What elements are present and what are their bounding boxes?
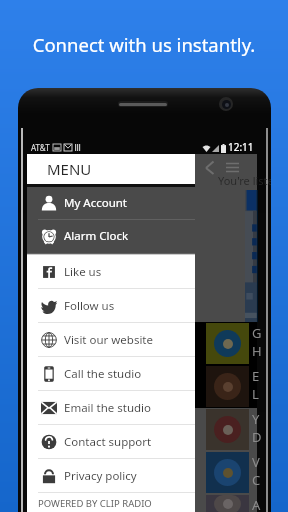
staticText: Connect with us instantly.: [0, 32, 288, 57]
button[interactable]: Privacy policy: [27, 459, 195, 493]
staticText: My Account: [64, 195, 127, 211]
button[interactable]: V: [195, 451, 257, 494]
staticText: C: [252, 471, 261, 489]
button[interactable]: Follow us: [27, 289, 195, 323]
button[interactable]: Visit our website: [27, 323, 195, 357]
staticText: MENU: [47, 159, 92, 179]
staticText: POWERED BY CLIP RADIO: [38, 497, 152, 510]
staticText: 12:11: [228, 140, 254, 154]
button[interactable]: Call the studio: [27, 357, 195, 391]
button[interactable]: Alarm Clock: [27, 220, 195, 253]
staticText: Alarm Clock: [64, 228, 129, 244]
staticText: G: [252, 324, 262, 342]
staticText: Call the studio: [64, 366, 142, 382]
staticText: Email the studio: [64, 400, 152, 416]
button[interactable]: My Account: [27, 187, 195, 220]
button[interactable]: E: [195, 365, 257, 408]
staticText: H: [252, 342, 262, 360]
staticText: AT&T: [31, 142, 50, 153]
button[interactable]: G: [195, 322, 257, 365]
button[interactable]: Contact support: [27, 425, 195, 459]
button[interactable]: A: [195, 494, 257, 512]
staticText: Y: [252, 410, 260, 428]
staticText: E: [252, 367, 260, 385]
staticText: Like us: [64, 264, 102, 280]
staticText: Visit our website: [64, 332, 153, 348]
staticText: L: [252, 385, 259, 403]
staticText: A: [252, 496, 261, 512]
button[interactable]: Like us: [27, 255, 195, 289]
button[interactable]: Email the studio: [27, 391, 195, 425]
staticText: Privacy policy: [64, 468, 137, 484]
button[interactable]: Y: [195, 408, 257, 451]
staticText: Follow us: [64, 298, 115, 314]
staticText: Contact support: [64, 434, 152, 450]
staticText: You're listening: [218, 173, 271, 188]
staticText: V: [252, 453, 260, 471]
staticText: D: [252, 428, 262, 446]
